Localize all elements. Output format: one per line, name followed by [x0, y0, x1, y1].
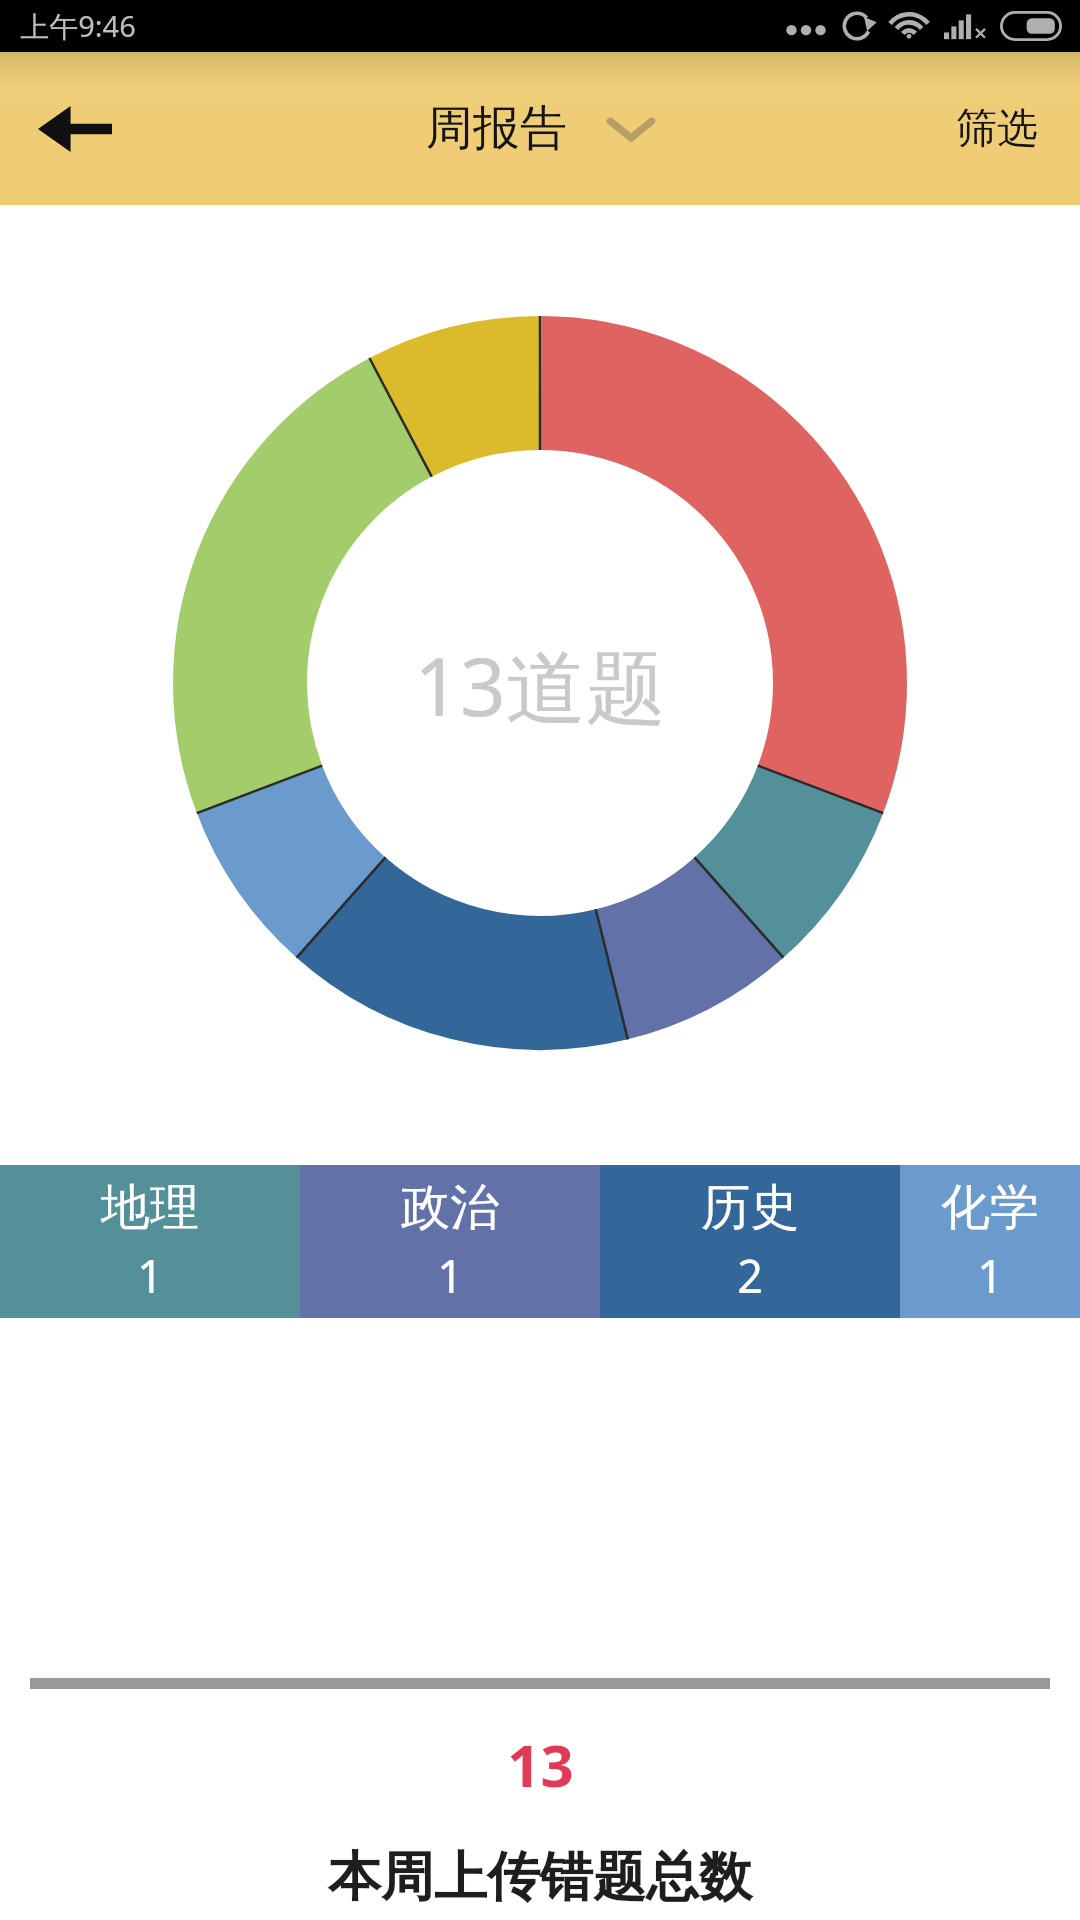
staticText: 1 [977, 1245, 1003, 1306]
button[interactable]: 地理 [0, 1165, 300, 1318]
button[interactable]: 筛选 [914, 52, 1080, 205]
button[interactable]: 周报告 [426, 99, 655, 158]
staticText: 2 [737, 1245, 763, 1306]
button[interactable]: 政治 [300, 1165, 600, 1318]
staticText: 13道题 [414, 630, 666, 739]
staticText: 化学 [941, 1177, 1039, 1239]
button[interactable]: 化学 [900, 1165, 1080, 1318]
button[interactable]: 返回 [0, 52, 150, 205]
staticText: 历史 [701, 1177, 799, 1239]
staticText: 1 [437, 1245, 463, 1306]
staticText: 筛选 [956, 103, 1038, 155]
staticText: 周报告 [426, 99, 567, 158]
button[interactable]: 历史 [600, 1165, 900, 1318]
staticText: 本周上传错题总数 [328, 1844, 752, 1911]
staticText: 1 [137, 1245, 163, 1306]
staticText: 政治 [401, 1177, 499, 1239]
staticText: 13 [507, 1725, 574, 1804]
staticText: 地理 [101, 1177, 199, 1239]
staticText: 上午9:46 [20, 6, 136, 46]
